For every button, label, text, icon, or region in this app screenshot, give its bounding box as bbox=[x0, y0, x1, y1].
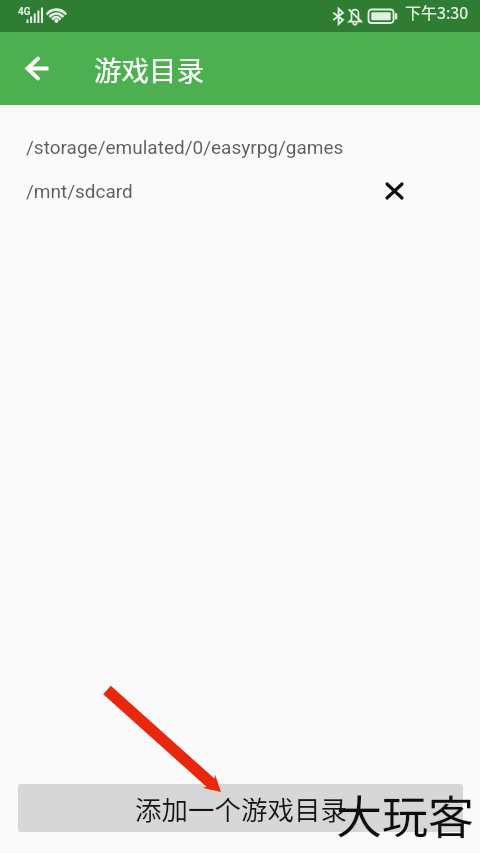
staticText: 4G bbox=[18, 6, 31, 18]
button[interactable]: Remove bbox=[375, 172, 413, 210]
staticText: 游戏目录 bbox=[94, 49, 204, 89]
staticText: 大玩客 bbox=[336, 781, 474, 848]
staticText: /mnt/sdcard bbox=[26, 180, 133, 202]
button[interactable]: /mnt/sdcard bbox=[0, 169, 480, 213]
staticText: 下午3:30 bbox=[405, 0, 469, 23]
button[interactable]: Back bbox=[15, 46, 60, 91]
button[interactable]: 添加一个游戏目录 bbox=[18, 784, 463, 832]
staticText: 添加一个游戏目录 bbox=[135, 789, 347, 827]
staticText: /storage/emulated/0/easyrpg/games bbox=[26, 136, 344, 158]
button[interactable]: /storage/emulated/0/easyrpg/games bbox=[0, 125, 480, 169]
